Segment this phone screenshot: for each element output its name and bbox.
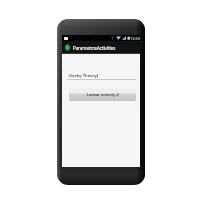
staticText: 13:50 — [130, 36, 140, 41]
button[interactable]: Geeky Theory — [67, 70, 136, 80]
staticText: Geeky Theory — [69, 73, 97, 79]
other: App icon — [64, 44, 71, 51]
staticText: ParametrosActivities — [73, 45, 116, 51]
button[interactable]: Lanzar activity 2 — [69, 88, 136, 101]
staticText: Lanzar activity 2 — [87, 92, 119, 97]
button[interactable]: App icon — [62, 41, 140, 54]
